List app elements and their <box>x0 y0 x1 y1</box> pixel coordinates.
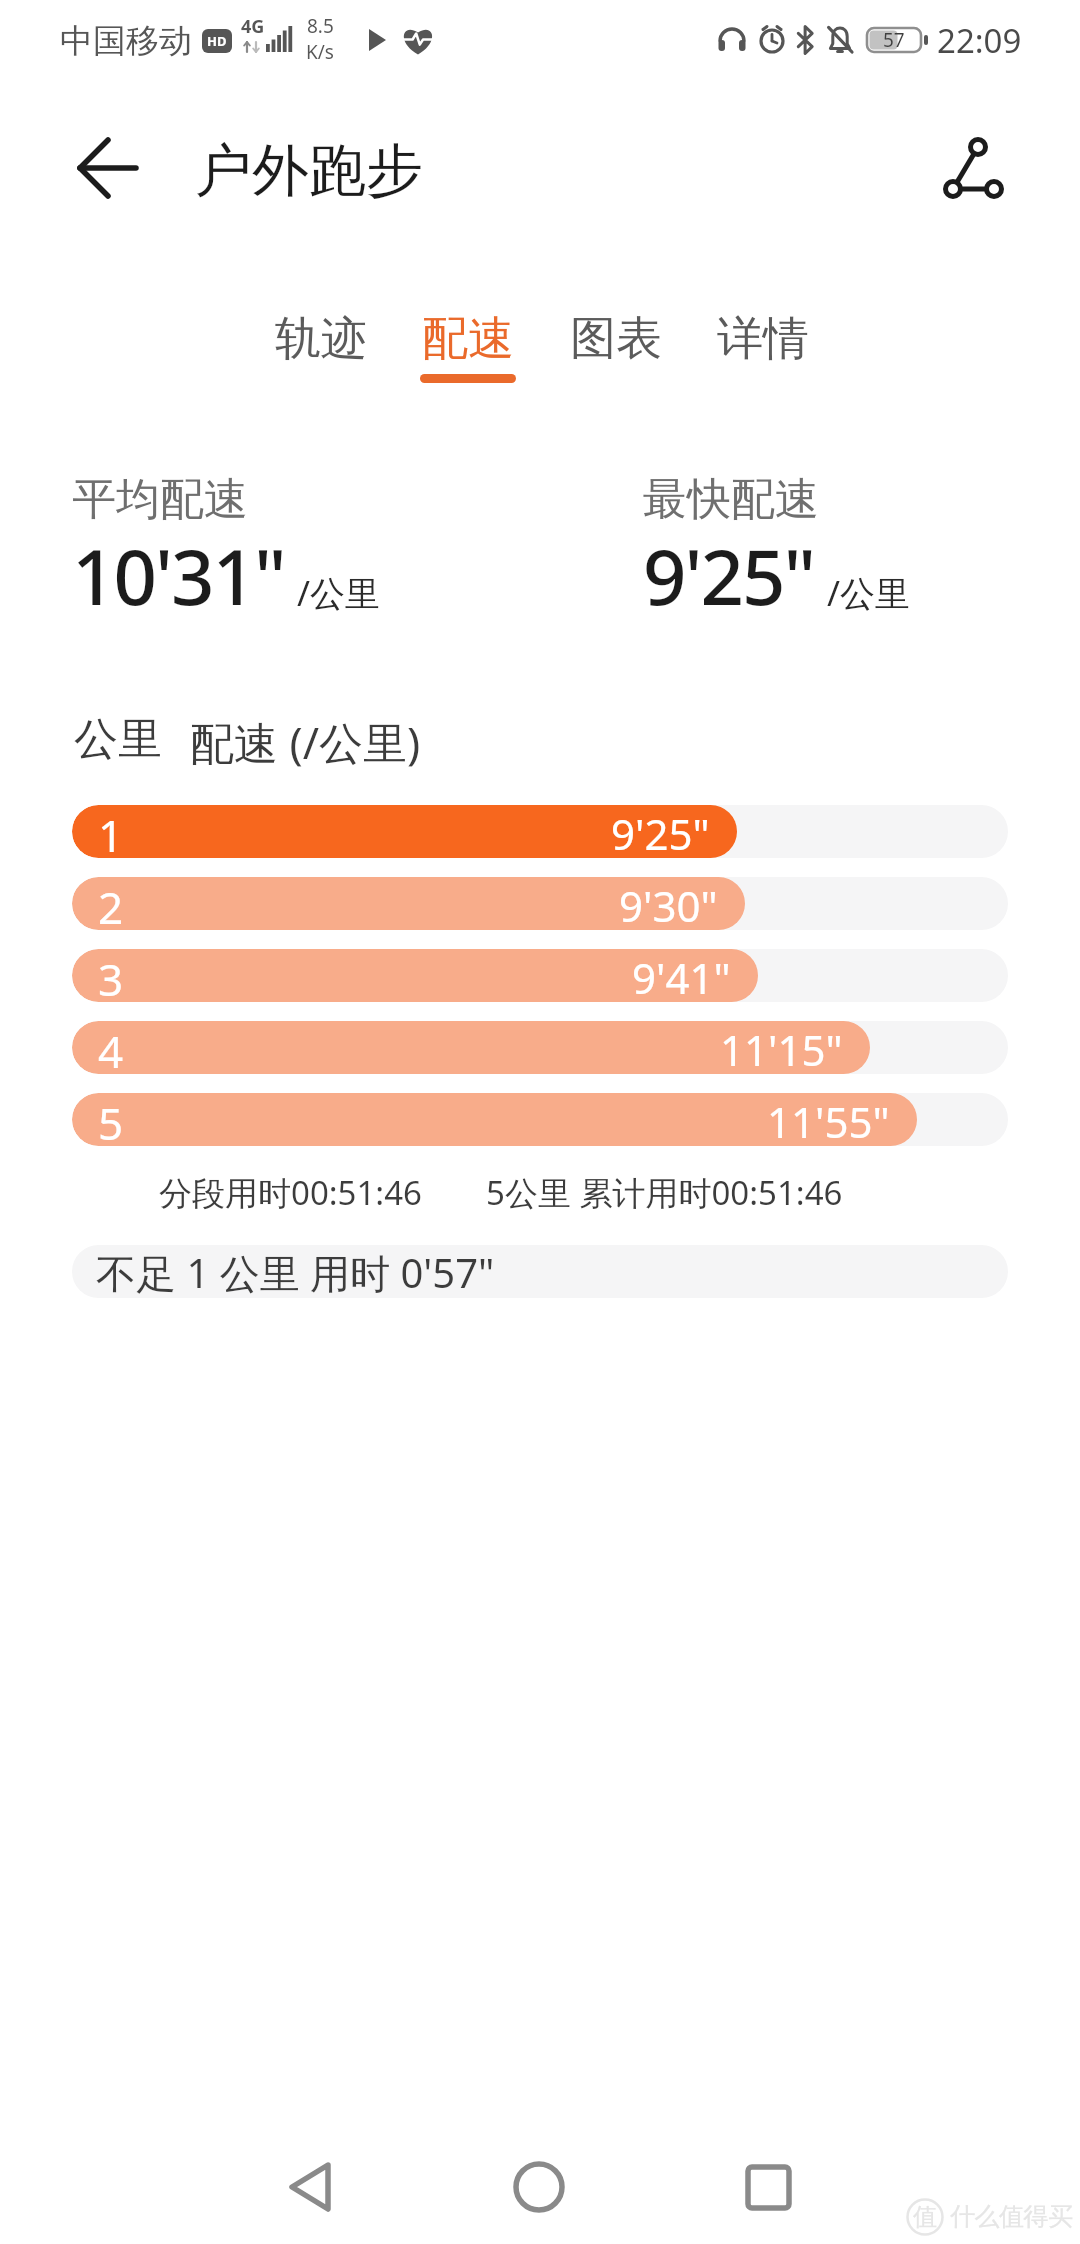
staticText: 平均配速 <box>72 472 248 527</box>
staticText: 户外跑步 <box>195 135 423 207</box>
button[interactable] <box>713 2132 823 2242</box>
staticText: 2 <box>98 877 124 930</box>
staticText: 9'25" <box>611 805 710 858</box>
button[interactable]: 图表 <box>558 299 673 379</box>
staticText: 详情 <box>717 310 809 368</box>
staticText: 值 <box>913 2202 937 2232</box>
staticText: 22:09 <box>937 18 1022 63</box>
button[interactable]: 轨迹 <box>263 299 378 379</box>
staticText: /公里 <box>827 569 911 617</box>
button[interactable] <box>62 122 154 214</box>
button[interactable] <box>484 2132 594 2242</box>
staticText: 图表 <box>570 310 662 368</box>
staticText: 分段用时00:51:46 <box>159 1170 422 1215</box>
staticText: 轨迹 <box>275 310 367 368</box>
button[interactable] <box>255 2132 365 2242</box>
staticText: 11'55" <box>767 1093 890 1146</box>
staticText: 1 <box>98 805 124 858</box>
staticText: K/s <box>306 39 334 65</box>
button[interactable]: 详情 <box>705 299 820 379</box>
staticText: 8.5 <box>307 13 334 39</box>
staticText: /公里 <box>297 569 381 617</box>
staticText: 5公里 累计用时00:51:46 <box>486 1170 843 1215</box>
staticText: 5 <box>98 1093 124 1146</box>
staticText: 11'15" <box>720 1021 843 1074</box>
staticText: 9'30" <box>619 877 718 930</box>
staticText: 3 <box>98 949 124 1002</box>
staticText: 不足 1 公里 用时 0'57" <box>96 1245 495 1298</box>
staticText: 什么值得买 <box>950 2201 1073 2232</box>
staticText: 9'25" <box>643 524 815 628</box>
staticText: 57 <box>883 27 905 53</box>
staticText: 最快配速 <box>643 472 819 527</box>
button[interactable] <box>920 122 1020 214</box>
button[interactable]: 配速 <box>410 299 525 379</box>
staticText: 公里 <box>74 712 162 767</box>
staticText: 4G <box>241 14 265 39</box>
staticText: HD <box>207 32 227 50</box>
staticText: 10'31" <box>72 524 285 628</box>
staticText: 配速 <box>422 310 514 368</box>
staticText: 9'41" <box>632 949 731 1002</box>
staticText: 中国移动 <box>60 20 192 62</box>
staticText: 配速 (/公里) <box>190 712 421 772</box>
staticText: 4 <box>98 1021 124 1074</box>
